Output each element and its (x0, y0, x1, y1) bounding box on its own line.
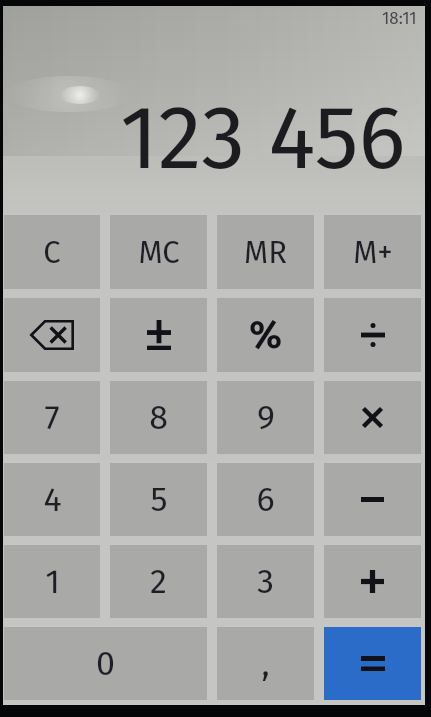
staticText: % (249, 312, 282, 358)
staticText: 0 (96, 643, 115, 684)
button[interactable]: 9 (217, 381, 314, 454)
button[interactable]: 0 (4, 627, 207, 700)
staticText: 3 (257, 561, 274, 602)
staticText: 7 (44, 397, 60, 438)
button[interactable]: Divide (324, 298, 421, 372)
button[interactable]: 5 (110, 463, 207, 536)
button[interactable]: 7 (4, 381, 100, 454)
staticText: 1 (45, 561, 60, 602)
staticText: 18:11 (382, 8, 417, 28)
button[interactable]: Minus (324, 463, 421, 536)
button[interactable]: Equals (324, 627, 421, 700)
staticText: C (43, 234, 61, 271)
staticText: M+ (353, 234, 393, 271)
button[interactable]: C (4, 215, 100, 289)
button[interactable]: 8 (110, 381, 207, 454)
button[interactable]: 4 (4, 463, 100, 536)
button[interactable]: M+ (324, 215, 421, 289)
button[interactable]: , (217, 627, 314, 700)
button[interactable]: Multiply (324, 381, 421, 454)
staticText: 5 (150, 479, 168, 520)
button[interactable]: Backspace (4, 298, 100, 372)
button[interactable]: 1 (4, 545, 100, 618)
staticText: 8 (149, 397, 168, 438)
staticText: 4 (43, 479, 62, 520)
button[interactable]: MR (217, 215, 314, 289)
staticText: 9 (257, 397, 275, 438)
button[interactable]: Plus minus (110, 298, 207, 372)
staticText: 123 456 (120, 86, 406, 192)
button[interactable]: 2 (110, 545, 207, 618)
button[interactable]: Plus (324, 545, 421, 618)
button[interactable]: 6 (217, 463, 314, 536)
staticText: , (261, 643, 270, 684)
staticText: 2 (150, 561, 167, 602)
button[interactable]: MC (110, 215, 207, 289)
button[interactable]: % (217, 298, 314, 372)
staticText: 6 (256, 479, 275, 520)
staticText: MC (138, 234, 180, 271)
staticText: MR (244, 234, 287, 271)
button[interactable]: 3 (217, 545, 314, 618)
